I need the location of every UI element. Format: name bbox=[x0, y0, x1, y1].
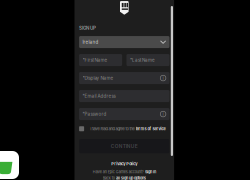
button[interactable]: *Last Name bbox=[126, 54, 169, 66]
staticText: I have read and agree to the bbox=[89, 126, 135, 131]
staticText: Privacy Policy bbox=[111, 161, 137, 166]
button[interactable]: all sign up options bbox=[116, 176, 146, 180]
staticText: terms of service bbox=[135, 126, 165, 131]
button[interactable]: CONTINUE bbox=[79, 139, 169, 153]
staticText: i bbox=[163, 111, 164, 117]
staticText: *First Name bbox=[82, 57, 107, 63]
staticText: *Display Name bbox=[82, 75, 113, 81]
staticText: CONTINUE bbox=[111, 143, 138, 149]
button[interactable]: *Password bbox=[79, 108, 169, 120]
button[interactable]: Ireland bbox=[79, 36, 169, 48]
button[interactable]: Sign In bbox=[145, 170, 156, 174]
staticText: Sign In bbox=[145, 170, 156, 174]
staticText: Back to bbox=[103, 176, 115, 180]
staticText: i bbox=[163, 75, 164, 81]
staticText: all sign up options bbox=[116, 176, 146, 180]
staticText: *Email Address bbox=[82, 93, 115, 99]
staticText: SIGN UP bbox=[79, 25, 96, 31]
staticText: Have an Epic Games account? bbox=[93, 170, 144, 174]
staticText: *Last Name bbox=[130, 57, 155, 63]
staticText: Ireland bbox=[82, 39, 98, 45]
button[interactable]: *Display Name bbox=[79, 72, 169, 84]
button[interactable]: *First Name bbox=[79, 54, 122, 66]
button[interactable]: *Email Address bbox=[79, 90, 169, 102]
staticText: *Password bbox=[82, 111, 106, 117]
button[interactable]: Privacy Policy bbox=[111, 161, 137, 166]
button[interactable]: I have read and agree to the bbox=[79, 126, 169, 131]
